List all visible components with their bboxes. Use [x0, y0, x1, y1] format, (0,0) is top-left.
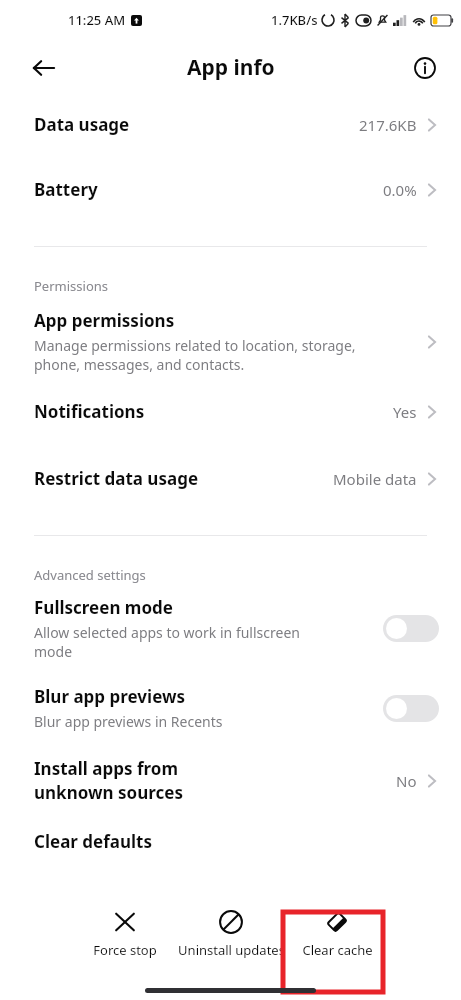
- button[interactable]: Install apps from unknown sources: [0, 757, 461, 804]
- staticText: Allow selected apps to work in fullscree…: [34, 623, 300, 661]
- staticText: 11:25 AM: [68, 11, 126, 29]
- staticText: Restrict data usage: [34, 467, 333, 490]
- staticText: Yes: [393, 402, 417, 422]
- staticText: Blur app previews in Recents: [34, 712, 223, 731]
- staticText: 217.6KB: [359, 115, 417, 135]
- button[interactable]: Battery: [0, 178, 461, 207]
- button[interactable]: Restrict data usage: [0, 467, 461, 496]
- button[interactable]: Toggle: [383, 615, 439, 642]
- button[interactable]: Notifications: [0, 400, 461, 429]
- staticText: 0.0%: [383, 180, 417, 200]
- staticText: Blur app previews: [34, 685, 186, 708]
- staticText: Clear defaults: [34, 830, 153, 853]
- button[interactable]: Data usage: [0, 103, 461, 142]
- button[interactable]: App permissions: [0, 309, 461, 374]
- staticText: Fullscreen mode: [34, 596, 173, 619]
- staticText: Force stop: [93, 941, 157, 959]
- button[interactable]: Clear cache: [287, 905, 387, 963]
- staticText: 1.7KB/s: [271, 11, 318, 29]
- button[interactable]: Blur app previews: [0, 685, 461, 731]
- staticText: Notifications: [34, 400, 393, 423]
- button[interactable]: Force stop: [75, 905, 175, 963]
- staticText: Mobile data: [333, 469, 417, 489]
- staticText: Battery: [34, 178, 383, 201]
- staticText: Clear cache: [302, 941, 373, 959]
- button[interactable]: Toggle: [383, 695, 439, 722]
- staticText: Uninstall updates: [178, 941, 285, 959]
- staticText: No: [396, 771, 417, 791]
- button[interactable]: Uninstall updates: [175, 905, 287, 963]
- staticText: Install apps from unknown sources: [34, 757, 396, 804]
- button[interactable]: Back: [22, 46, 66, 90]
- staticText: Data usage: [34, 113, 359, 136]
- staticText: App permissions: [34, 309, 175, 332]
- staticText: App info: [187, 53, 275, 82]
- button[interactable]: Fullscreen mode: [0, 596, 461, 661]
- staticText: Permissions: [34, 277, 109, 295]
- staticText: Advanced settings: [34, 566, 146, 584]
- staticText: Manage permissions related to location, …: [34, 336, 356, 374]
- button[interactable]: About: [405, 48, 445, 88]
